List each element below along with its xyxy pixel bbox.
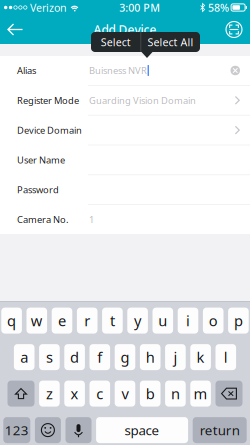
staticText: o [209, 311, 218, 330]
staticText: 123 [5, 421, 29, 439]
button[interactable]: y [127, 308, 148, 334]
staticText: Camera No. [17, 213, 69, 226]
staticText: f [97, 347, 102, 367]
button[interactable]: Delete [215, 381, 242, 407]
staticText: Register Mode [17, 94, 79, 106]
staticText: Add Device [93, 21, 156, 37]
staticText: Select [101, 35, 131, 49]
button[interactable]: u [152, 308, 173, 334]
button[interactable]: m [190, 381, 211, 407]
staticText: d [70, 347, 79, 367]
staticText: b [146, 384, 155, 403]
button[interactable]: w [26, 308, 47, 334]
button[interactable]: p [228, 308, 249, 334]
button[interactable]: n [165, 381, 186, 407]
button[interactable]: o [203, 308, 223, 334]
button[interactable]: x [64, 381, 85, 407]
button[interactable]: Back [0, 15, 33, 43]
button[interactable]: Select All [141, 32, 200, 52]
staticText: Alias [17, 64, 36, 77]
button[interactable]: b [140, 381, 160, 407]
button[interactable]: Camera No. [0, 205, 250, 234]
staticText: g [120, 347, 129, 367]
staticText: z [46, 384, 53, 403]
staticText: p [234, 311, 243, 330]
staticText: User Name [17, 154, 65, 166]
button[interactable]: t [102, 308, 123, 334]
button[interactable]: v [115, 381, 135, 407]
button[interactable]: e [52, 308, 72, 334]
button[interactable]: f [89, 344, 110, 370]
staticText: k [197, 347, 205, 367]
button[interactable]: Password [0, 175, 250, 204]
staticText: h [146, 347, 155, 367]
button[interactable]: Shift [7, 381, 34, 407]
button[interactable]: Register Mode [0, 86, 250, 115]
staticText: 1 [89, 213, 94, 226]
button[interactable]: s [39, 344, 60, 370]
button[interactable]: r [77, 308, 97, 334]
button[interactable]: 123 [3, 417, 30, 443]
button[interactable]: g [115, 344, 135, 370]
staticText: space [125, 421, 160, 439]
button[interactable]: return [193, 417, 247, 443]
button[interactable]: Emoji [35, 417, 61, 443]
staticText: e [58, 311, 66, 330]
staticText: v [121, 384, 128, 403]
button[interactable]: space [96, 417, 188, 443]
staticText: m [194, 384, 208, 403]
staticText: j [173, 347, 177, 367]
staticText: l [224, 347, 228, 367]
staticText: Device Domain [17, 124, 82, 136]
button[interactable]: j [165, 344, 186, 370]
staticText: Buisness NVR [89, 64, 147, 77]
button[interactable]: Device Domain [0, 116, 250, 145]
button[interactable]: z [39, 381, 60, 407]
button[interactable]: k [190, 344, 211, 370]
button[interactable]: d [64, 344, 85, 370]
staticText: Select All [148, 35, 194, 49]
staticText: Guarding Vision Domain [89, 94, 196, 106]
staticText: r [84, 311, 90, 330]
staticText: 3:00 PM [119, 0, 160, 15]
button[interactable]: l [215, 344, 236, 370]
staticText: x [71, 384, 79, 403]
staticText: y [134, 311, 141, 330]
button[interactable]: Scan QR code [218, 15, 250, 43]
staticText: i [186, 311, 190, 330]
button[interactable]: Alias [0, 56, 250, 85]
button[interactable]: User Name [0, 145, 250, 174]
staticText: c [96, 384, 103, 403]
staticText: a [20, 347, 28, 367]
staticText: s [46, 347, 53, 367]
staticText: w [31, 311, 43, 330]
staticText: 58% [208, 0, 229, 15]
staticText: return [200, 421, 240, 439]
button[interactable]: Select [91, 32, 140, 52]
button[interactable]: c [89, 381, 110, 407]
button[interactable]: i [178, 308, 198, 334]
staticText: t [110, 311, 115, 330]
button[interactable]: q [1, 308, 22, 334]
button[interactable]: a [14, 344, 34, 370]
button[interactable]: h [140, 344, 160, 370]
staticText: q [7, 311, 16, 330]
button[interactable]: Dictation [65, 417, 91, 443]
staticText: Verizon [30, 0, 67, 15]
staticText: n [171, 384, 180, 403]
staticText: u [158, 311, 167, 330]
staticText: Password [17, 183, 59, 196]
